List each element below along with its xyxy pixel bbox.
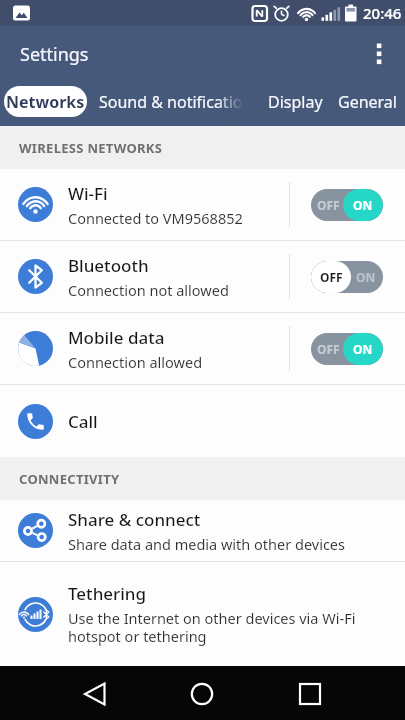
staticText: Connection not allowed xyxy=(68,280,229,300)
staticText: Networks xyxy=(6,91,85,113)
staticText: Share & connect xyxy=(68,508,201,531)
staticText: Share data and media with other devices xyxy=(68,534,345,554)
staticText: Wi-Fi xyxy=(68,182,108,205)
staticText: Settings xyxy=(20,42,89,67)
button[interactable]: Tethering xyxy=(0,562,405,666)
staticText: OFF xyxy=(320,269,343,285)
staticText: WIRELESS NETWORKS xyxy=(19,139,163,157)
button[interactable]: OFF xyxy=(311,189,383,221)
staticText: ON xyxy=(353,341,373,357)
button[interactable] xyxy=(71,666,119,720)
staticText: Mobile data xyxy=(68,326,165,349)
staticText: General xyxy=(338,91,397,113)
button[interactable]: Networks xyxy=(4,86,87,117)
staticText: Bluetooth xyxy=(68,254,149,277)
staticText: 20:46 xyxy=(363,3,402,23)
staticText: ON xyxy=(356,269,376,285)
staticText: Call xyxy=(68,410,98,433)
staticText: CONNECTIVITY xyxy=(19,470,120,488)
staticText: Connected to VM9568852 xyxy=(68,208,243,228)
button[interactable]: Call xyxy=(0,385,405,457)
button[interactable]: Sound & notification xyxy=(99,78,243,126)
button[interactable]: Display xyxy=(258,78,332,126)
button[interactable] xyxy=(178,666,226,720)
staticText: Connection allowed xyxy=(68,352,203,372)
button[interactable] xyxy=(286,666,334,720)
button[interactable] xyxy=(365,40,393,68)
button[interactable]: OFF xyxy=(311,333,383,365)
button[interactable]: General xyxy=(332,78,402,126)
staticText: Tethering xyxy=(68,582,147,605)
button[interactable]: Mobile data xyxy=(0,313,405,384)
staticText: ON xyxy=(353,197,373,213)
staticText: Use the Internet on other devices via Wi… xyxy=(68,608,356,646)
button[interactable]: Bluetooth xyxy=(0,241,405,312)
staticText: Display xyxy=(268,91,323,113)
staticText: OFF xyxy=(317,341,340,357)
staticText: Sound & notification xyxy=(99,91,243,113)
staticText: OFF xyxy=(317,197,340,213)
button[interactable]: Wi-Fi xyxy=(0,169,405,240)
button[interactable]: ON xyxy=(311,261,383,293)
button[interactable]: Share & connect xyxy=(0,500,405,561)
